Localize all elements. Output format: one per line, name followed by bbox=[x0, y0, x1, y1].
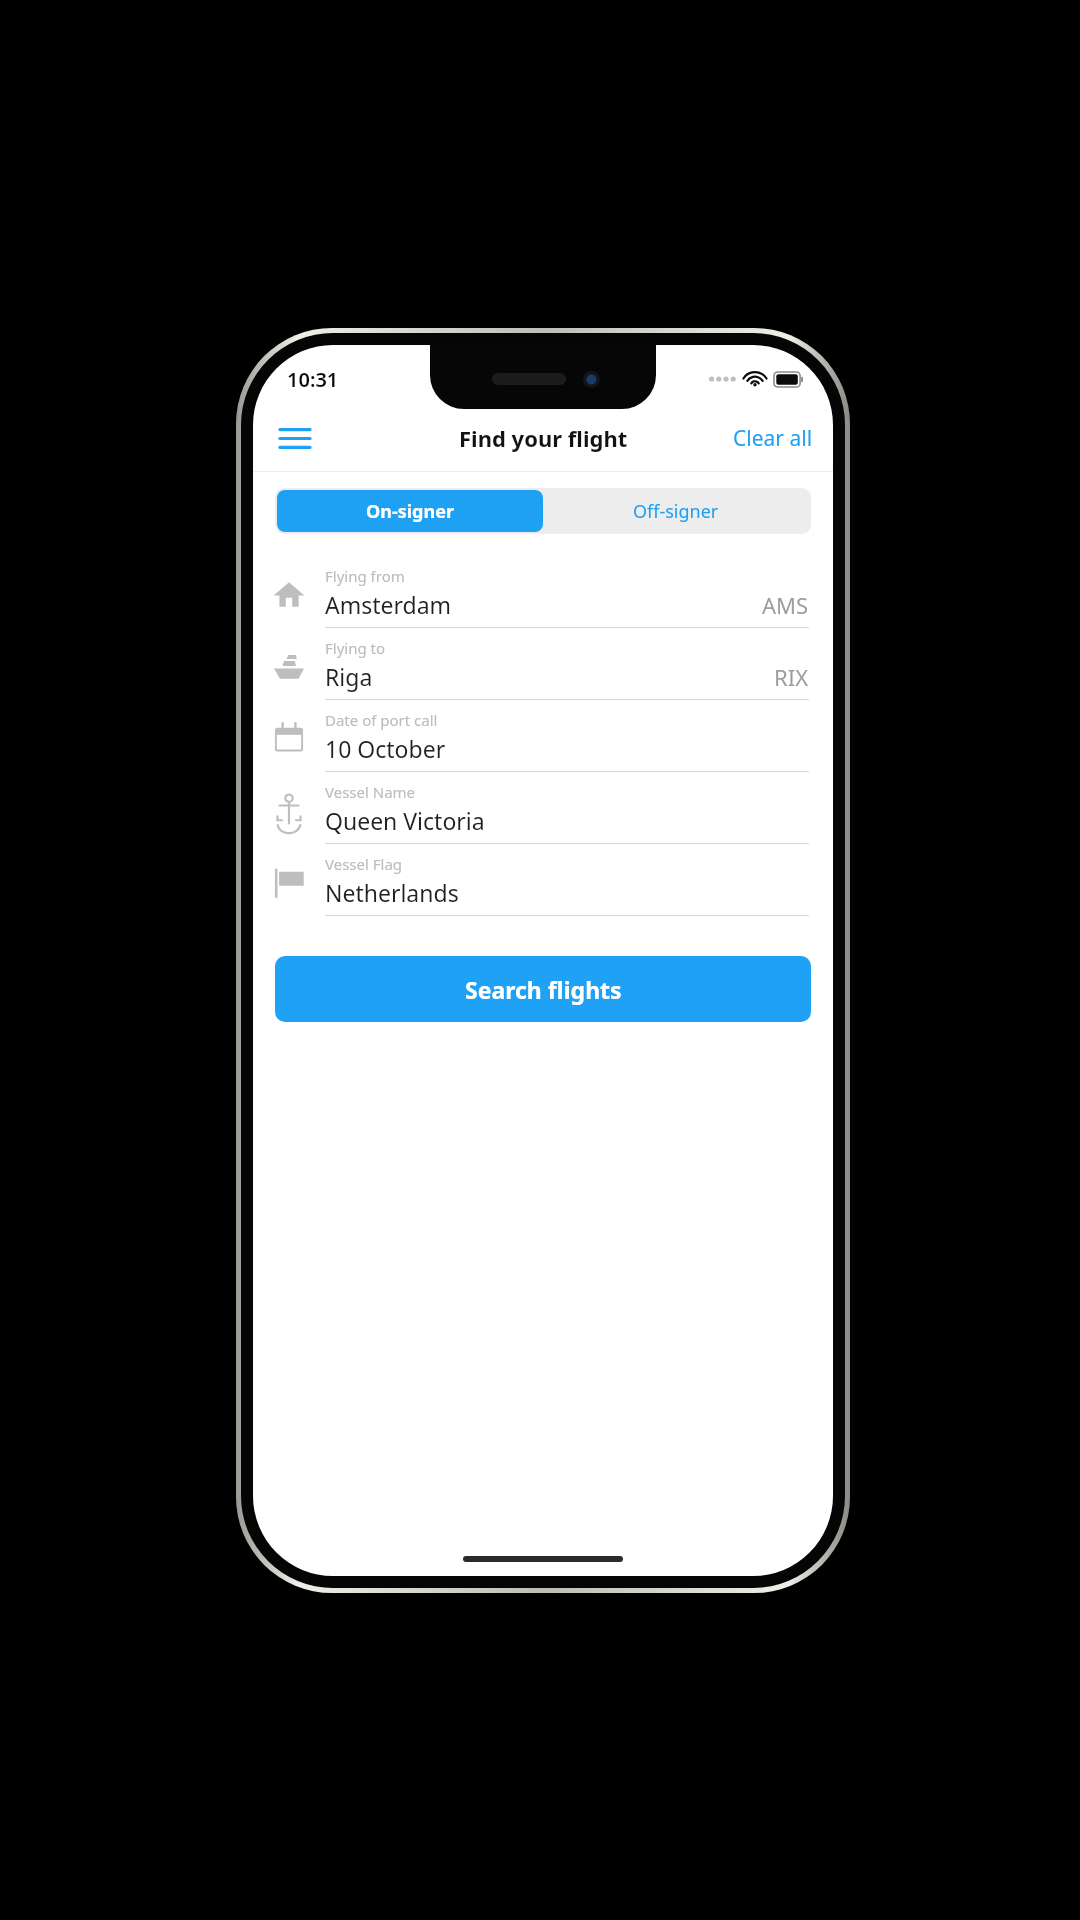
staticText: AMS bbox=[762, 590, 809, 620]
staticText: RIX bbox=[774, 662, 809, 692]
staticText: Amsterdam bbox=[325, 589, 762, 620]
staticText: Search flights bbox=[465, 974, 622, 1005]
button[interactable]: Search flights bbox=[275, 956, 811, 1022]
button[interactable]: Vessel Flag bbox=[253, 844, 833, 916]
staticText: 10:31 bbox=[287, 366, 339, 393]
button[interactable]: Vessel Name bbox=[253, 772, 833, 844]
staticText: 10 October bbox=[325, 733, 809, 764]
button[interactable]: Flying from bbox=[253, 556, 833, 628]
staticText: Off-signer bbox=[633, 499, 719, 524]
button[interactable]: Clear all bbox=[723, 416, 823, 461]
staticText: Vessel Flag bbox=[325, 854, 403, 874]
button[interactable]: Flying to bbox=[253, 628, 833, 700]
staticText: Vessel Name bbox=[325, 782, 416, 802]
staticText: Riga bbox=[325, 661, 774, 692]
staticText: Find your flight bbox=[459, 423, 628, 453]
button[interactable]: Date of port call bbox=[253, 700, 833, 772]
staticText: Clear all bbox=[733, 424, 813, 453]
button[interactable]: Off-signer bbox=[543, 490, 809, 532]
staticText: Flying to bbox=[325, 638, 386, 658]
staticText: Date of port call bbox=[325, 710, 438, 730]
staticText: Flying from bbox=[325, 566, 405, 586]
staticText: Netherlands bbox=[325, 877, 809, 908]
staticText: On-signer bbox=[366, 499, 454, 524]
staticText: Queen Victoria bbox=[325, 805, 809, 836]
button[interactable]: Menu bbox=[269, 412, 321, 464]
button[interactable]: On-signer bbox=[277, 490, 543, 532]
